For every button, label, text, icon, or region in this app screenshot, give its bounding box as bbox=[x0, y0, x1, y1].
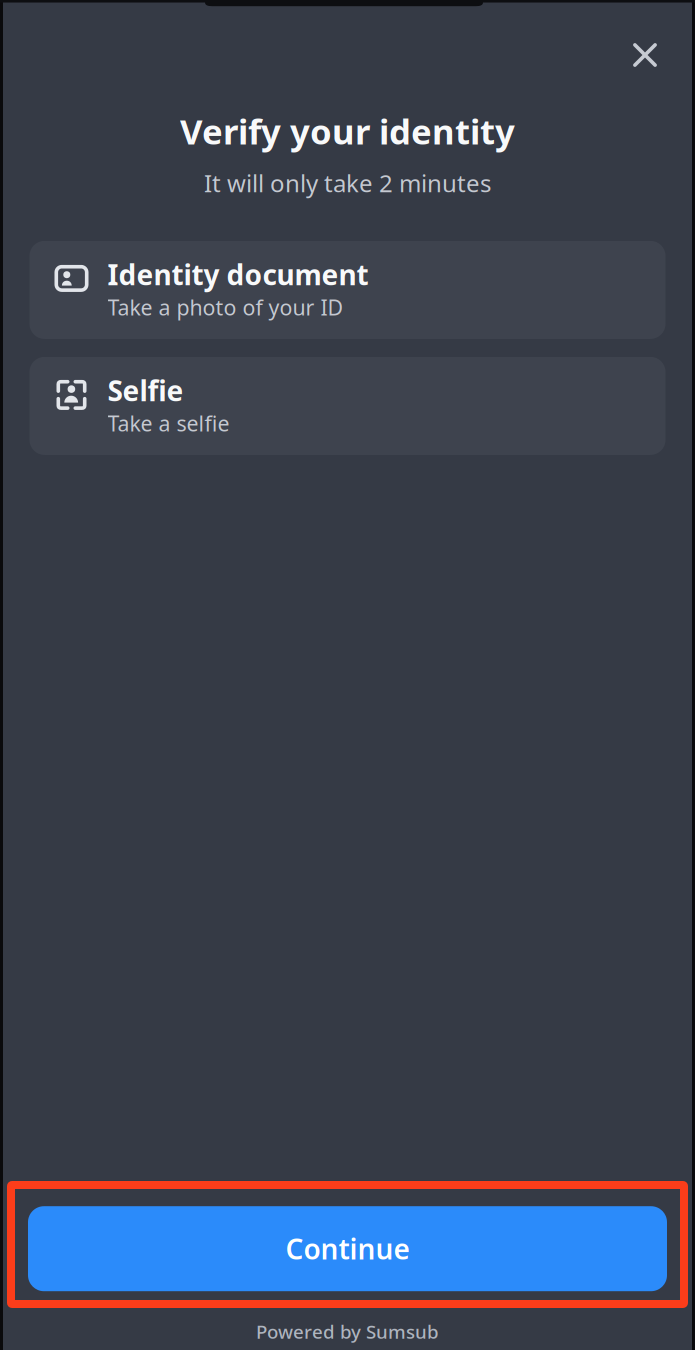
button[interactable]: Continue bbox=[28, 1206, 667, 1291]
staticText: Verify your identity bbox=[180, 108, 515, 154]
staticText: It will only take 2 minutes bbox=[204, 167, 491, 199]
button[interactable]: Identity document bbox=[29, 241, 665, 339]
staticText: Continue bbox=[285, 1230, 409, 1267]
button[interactable]: Selfie bbox=[29, 357, 665, 455]
staticText: Take a selfie bbox=[107, 409, 229, 437]
staticText: Take a photo of your ID bbox=[107, 293, 343, 321]
staticText: Identity document bbox=[107, 256, 368, 293]
staticText: Powered by Sumsub bbox=[256, 1319, 439, 1344]
staticText: Selfie bbox=[107, 372, 183, 409]
button[interactable]: Close bbox=[623, 33, 667, 77]
